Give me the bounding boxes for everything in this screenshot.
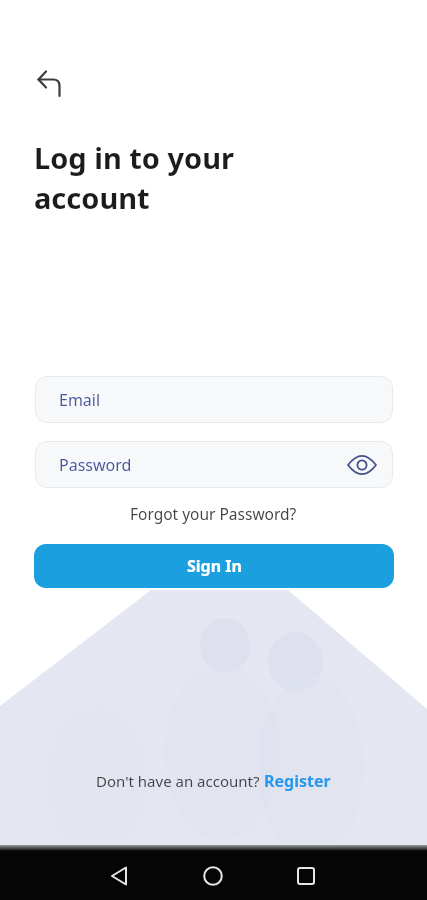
button[interactable]: Register xyxy=(264,770,331,792)
button[interactable]: Password xyxy=(35,441,393,488)
staticText: Log in to your account xyxy=(34,138,235,218)
button[interactable] xyxy=(26,66,70,110)
staticText: Email xyxy=(59,389,101,411)
staticText: Password xyxy=(59,454,132,476)
staticText: Don't have an account? xyxy=(96,771,264,791)
button[interactable]: Forgot your Password? xyxy=(130,503,297,524)
button[interactable]: Email xyxy=(35,376,393,423)
button[interactable]: Sign In xyxy=(34,544,394,588)
staticText: Sign In xyxy=(187,555,242,577)
